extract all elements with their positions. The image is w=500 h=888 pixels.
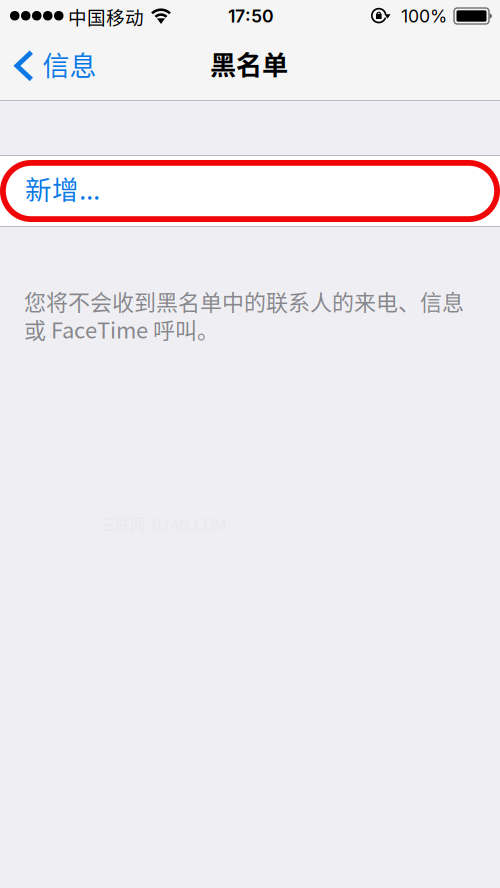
staticText: 17:50: [228, 5, 274, 27]
staticText: 新增...: [25, 169, 100, 207]
staticText: 您将不会收到黑名单中的联系人的来电、信息或 FaceTime 呼叫。: [24, 287, 464, 343]
staticText: 信息: [42, 45, 96, 84]
button[interactable]: 新增...: [0, 156, 500, 226]
staticText: 中国移动: [68, 3, 144, 30]
staticText: 黑名单: [210, 44, 288, 82]
button[interactable]: 信息: [0, 40, 112, 100]
staticText: 三联网 3LIAN.COM: [100, 513, 227, 535]
staticText: 100%: [401, 5, 447, 27]
